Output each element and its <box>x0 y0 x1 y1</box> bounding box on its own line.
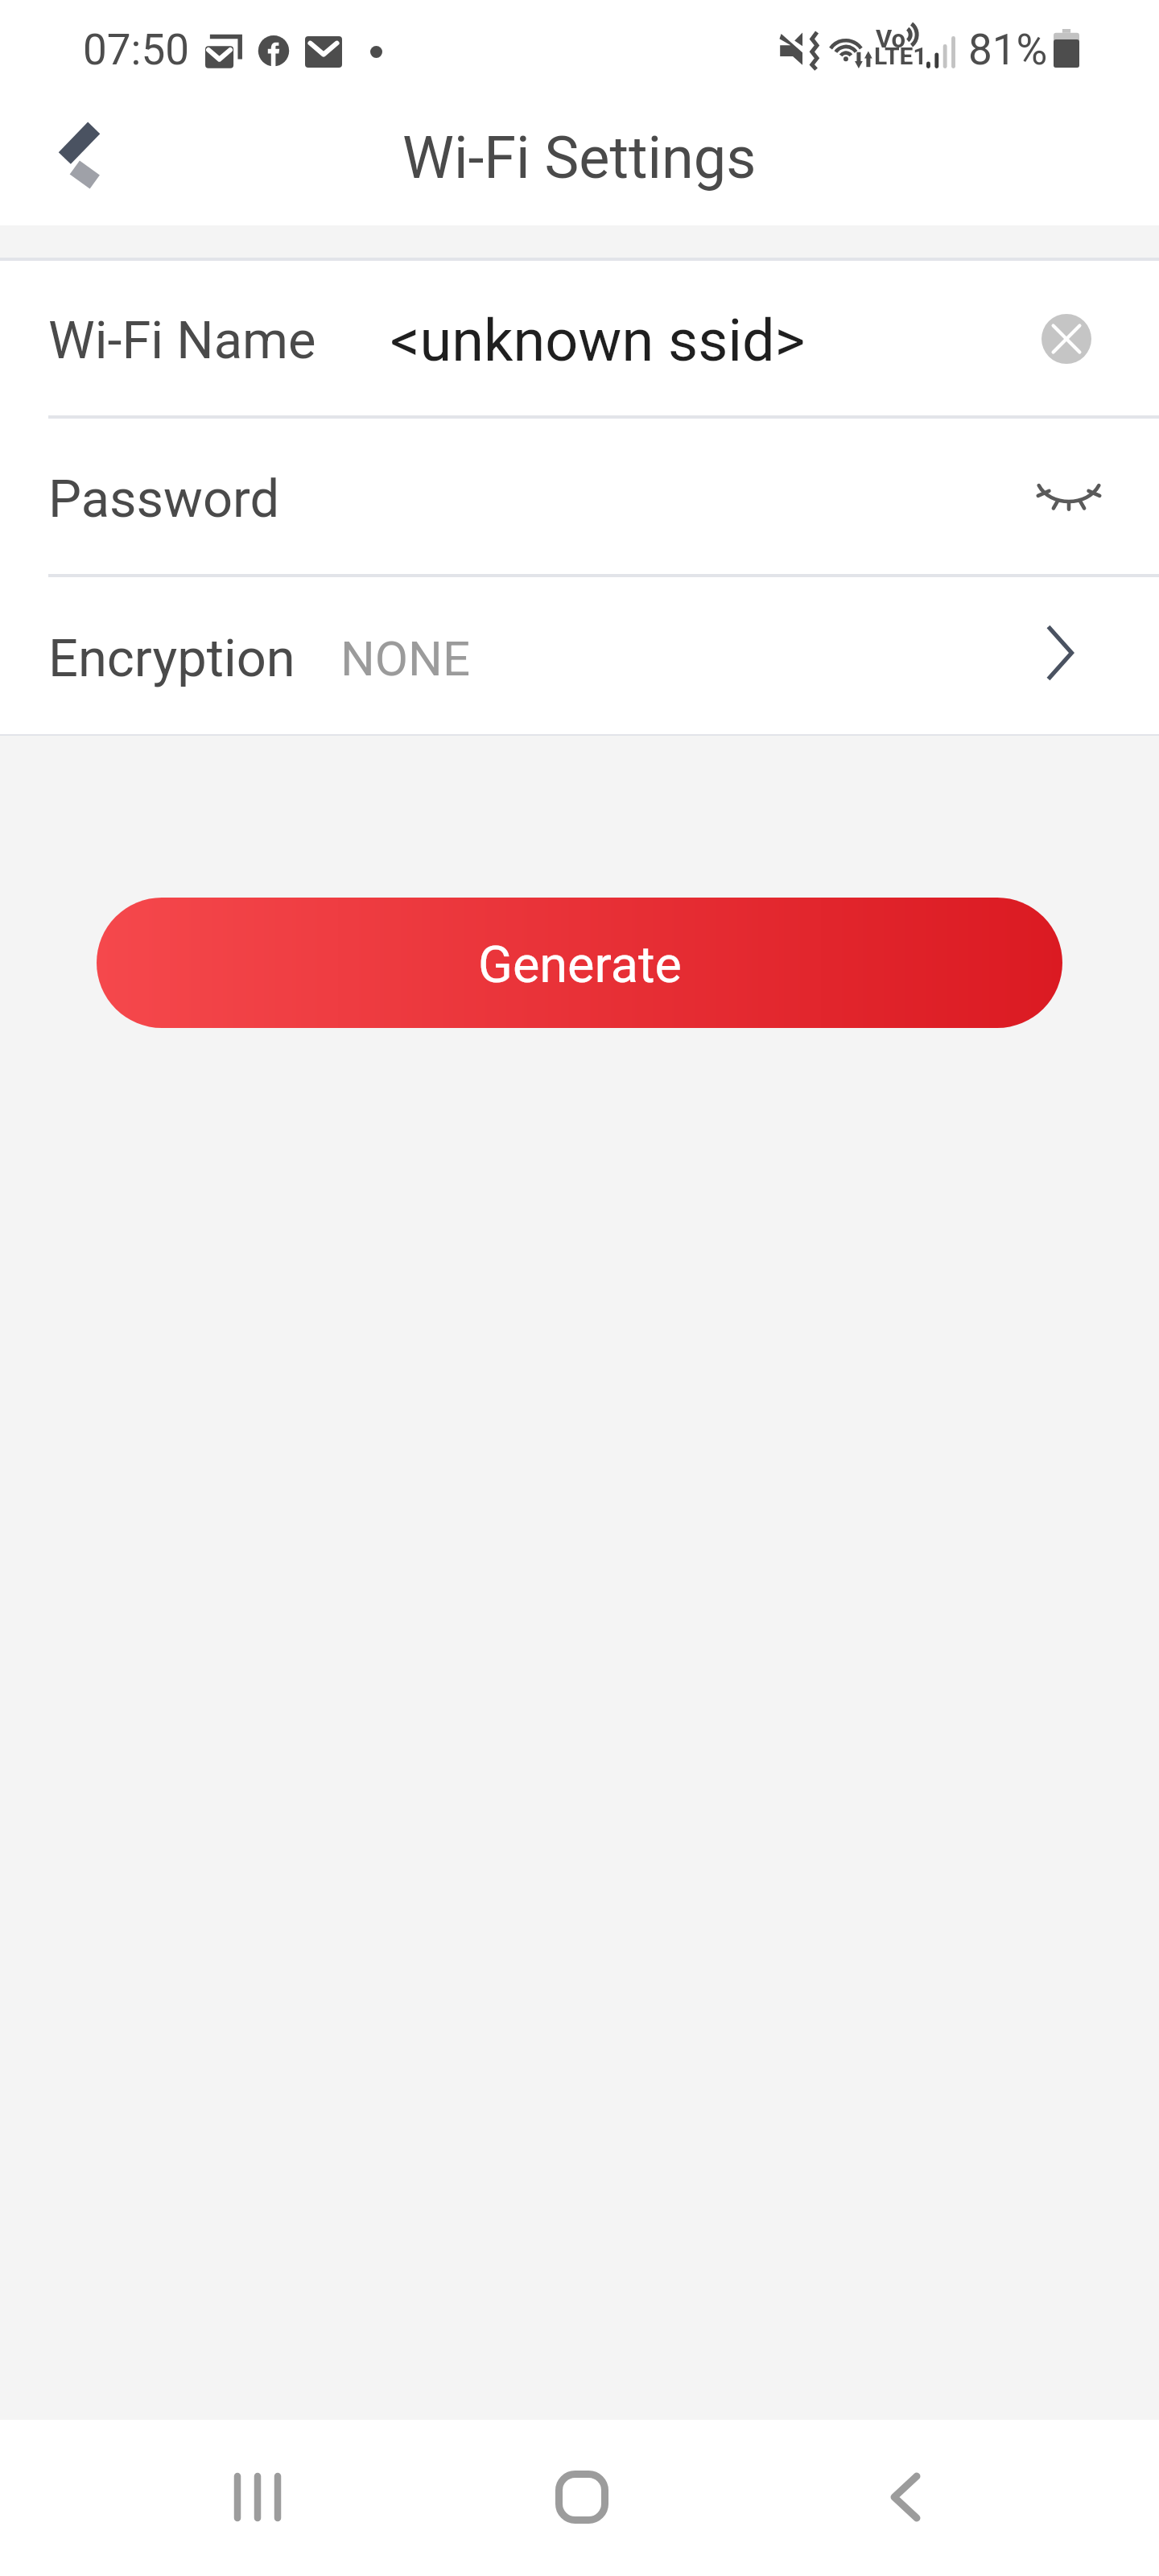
button[interactable]: Choose encryption <box>1024 613 1114 704</box>
staticText: <unknown ssid> <box>390 307 806 374</box>
button[interactable]: Clear Wi-Fi name <box>1024 295 1114 386</box>
button[interactable]: Encryption <box>0 577 1159 734</box>
staticText: Wi-Fi Name <box>48 310 316 371</box>
button[interactable]: Back <box>793 2420 1018 2576</box>
button[interactable]: Generate <box>97 898 1062 1028</box>
staticText: Vo <box>876 24 906 53</box>
button[interactable]: Wi-Fi Name <box>0 261 1159 415</box>
staticText: Password <box>48 469 280 530</box>
button[interactable]: Back <box>23 97 135 209</box>
staticText: LTE1 <box>874 42 927 70</box>
staticText: 81% <box>968 25 1048 75</box>
staticText: Encryption <box>48 628 295 689</box>
staticText: Wi-Fi Settings <box>402 124 757 192</box>
button[interactable]: Show password <box>1024 454 1114 544</box>
staticText: Generate <box>478 935 682 995</box>
button[interactable]: Home <box>469 2420 695 2576</box>
staticText: 07:50 <box>83 25 189 75</box>
button[interactable]: Password <box>0 419 1159 574</box>
button[interactable]: Recent apps <box>145 2420 370 2576</box>
staticText: NONE <box>340 630 470 687</box>
